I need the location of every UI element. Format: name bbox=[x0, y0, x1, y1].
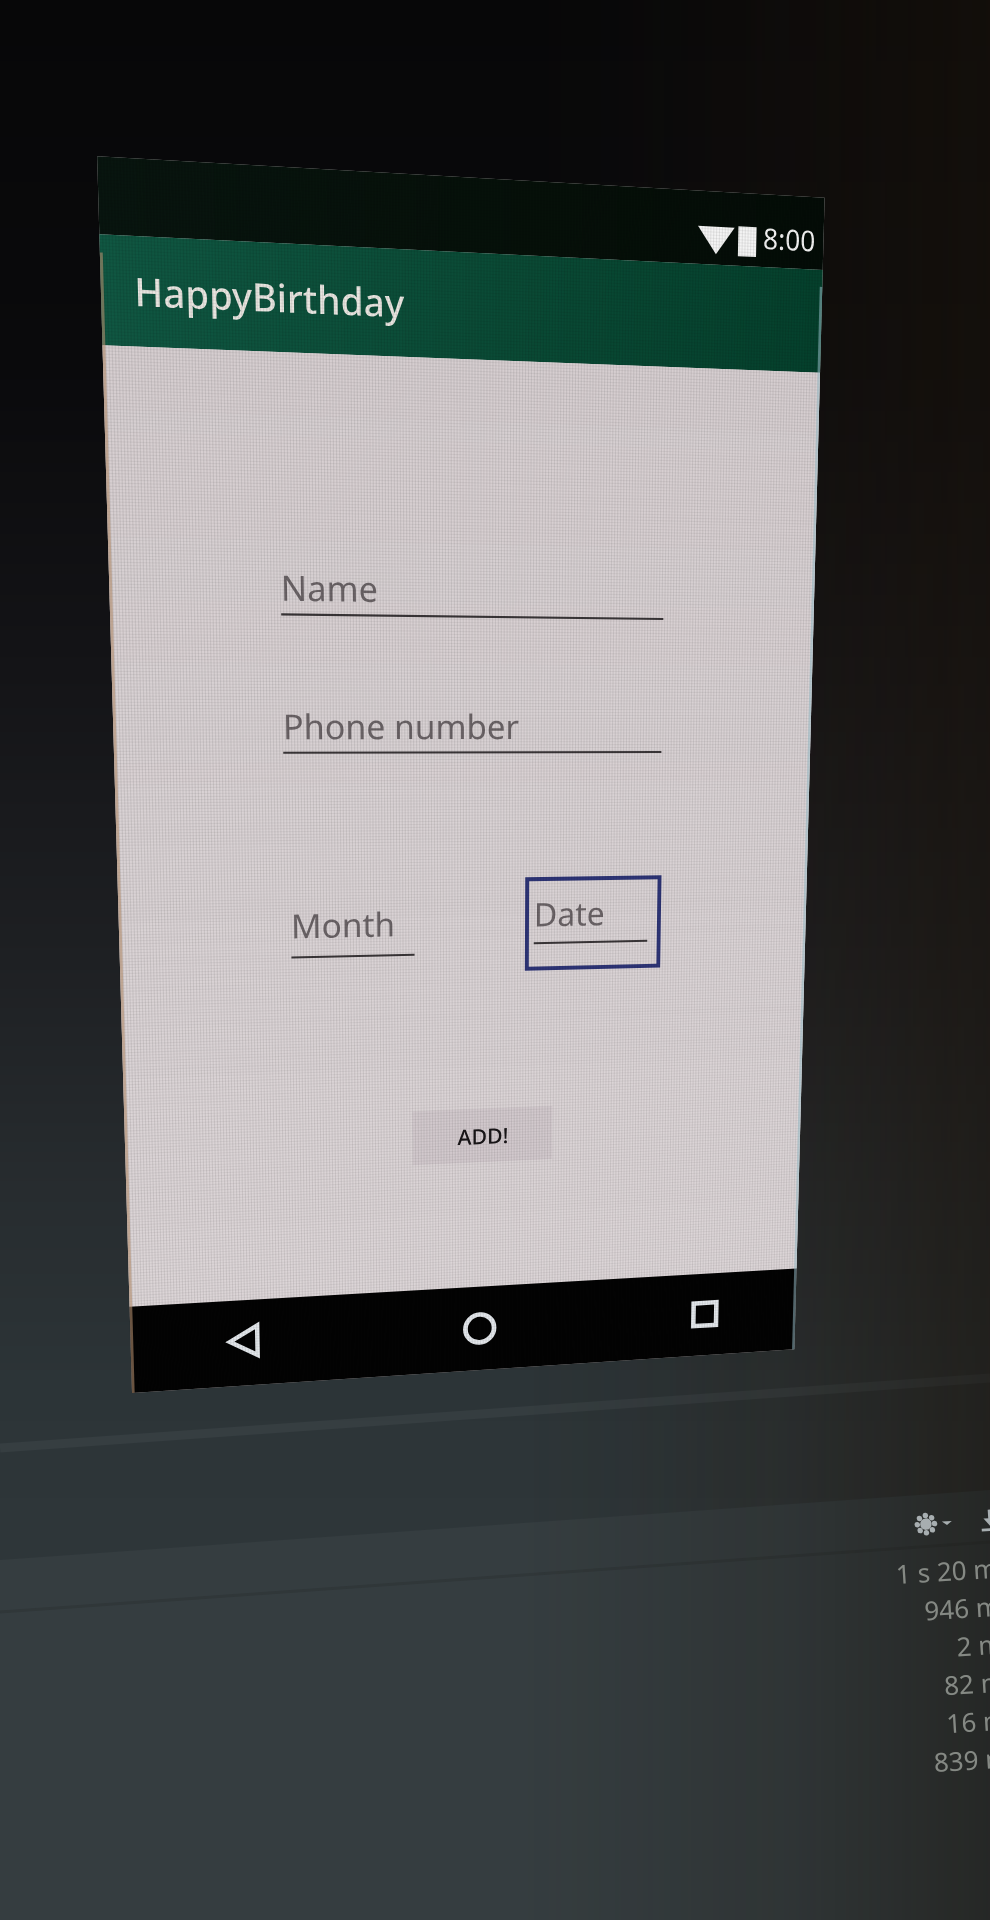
staticText: Phone number bbox=[282, 703, 520, 750]
button[interactable]: Name bbox=[280, 563, 664, 620]
staticText: ADD! bbox=[457, 1120, 509, 1151]
staticText: 82 ms bbox=[943, 1663, 990, 1702]
button[interactable]: Back bbox=[219, 1315, 272, 1367]
staticText: 946 ms bbox=[923, 1587, 990, 1627]
staticText: 1 s 20 ms bbox=[895, 1549, 990, 1591]
staticText: Date bbox=[534, 891, 606, 936]
staticText: HappyBirthday bbox=[134, 264, 405, 330]
button[interactable]: Phone number bbox=[282, 703, 662, 754]
staticText: Name bbox=[280, 563, 379, 612]
button[interactable]: Month bbox=[291, 901, 414, 958]
staticText: 16 ms bbox=[945, 1701, 990, 1740]
staticText: 2 ms bbox=[955, 1625, 990, 1663]
staticText: 839 ms bbox=[933, 1738, 990, 1779]
button[interactable]: Date bbox=[527, 877, 659, 969]
button[interactable]: Home bbox=[455, 1303, 504, 1354]
button[interactable]: Recents bbox=[680, 1289, 728, 1339]
button[interactable]: ADD! bbox=[412, 1106, 552, 1165]
staticText: Month bbox=[291, 901, 395, 948]
staticText: 8:00 bbox=[763, 218, 816, 260]
button[interactable]: HappyBirthday bbox=[99, 234, 823, 373]
